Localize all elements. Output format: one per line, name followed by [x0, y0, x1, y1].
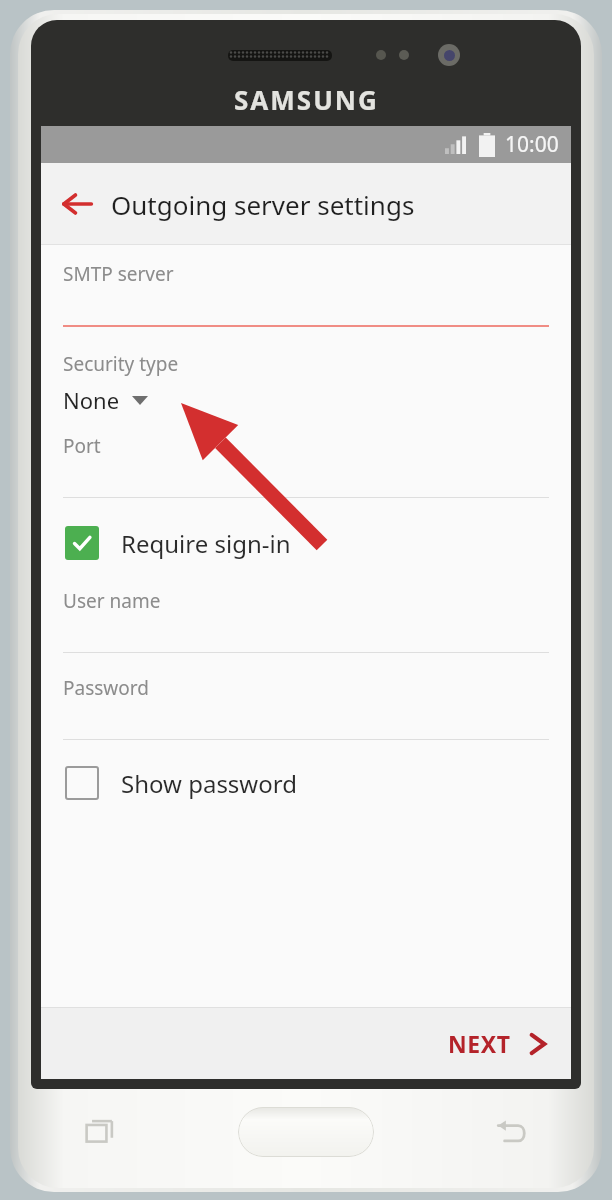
staticText: Port [63, 433, 101, 459]
staticText: SMTP server [63, 261, 174, 287]
staticText: Outgoing server settings [111, 187, 415, 222]
button[interactable]: Navigate up [51, 178, 103, 230]
staticText: Show password [121, 767, 297, 800]
button[interactable]: Back [488, 1109, 534, 1155]
staticText: User name [63, 588, 161, 614]
staticText: SAMSUNG [234, 82, 379, 117]
button[interactable]: NEXT [438, 1018, 557, 1069]
button[interactable]: Recent apps [78, 1109, 124, 1155]
button[interactable]: Home [238, 1107, 374, 1157]
button[interactable]: None [41, 383, 571, 417]
staticText: 10:00 [505, 130, 559, 159]
button[interactable]: Require sign-in [41, 520, 571, 566]
staticText: NEXT [448, 1028, 511, 1059]
staticText: Password [63, 675, 149, 701]
staticText: None [63, 385, 120, 415]
button[interactable]: Show password [41, 760, 571, 806]
staticText: Require sign-in [121, 527, 291, 560]
staticText: Security type [63, 351, 179, 377]
